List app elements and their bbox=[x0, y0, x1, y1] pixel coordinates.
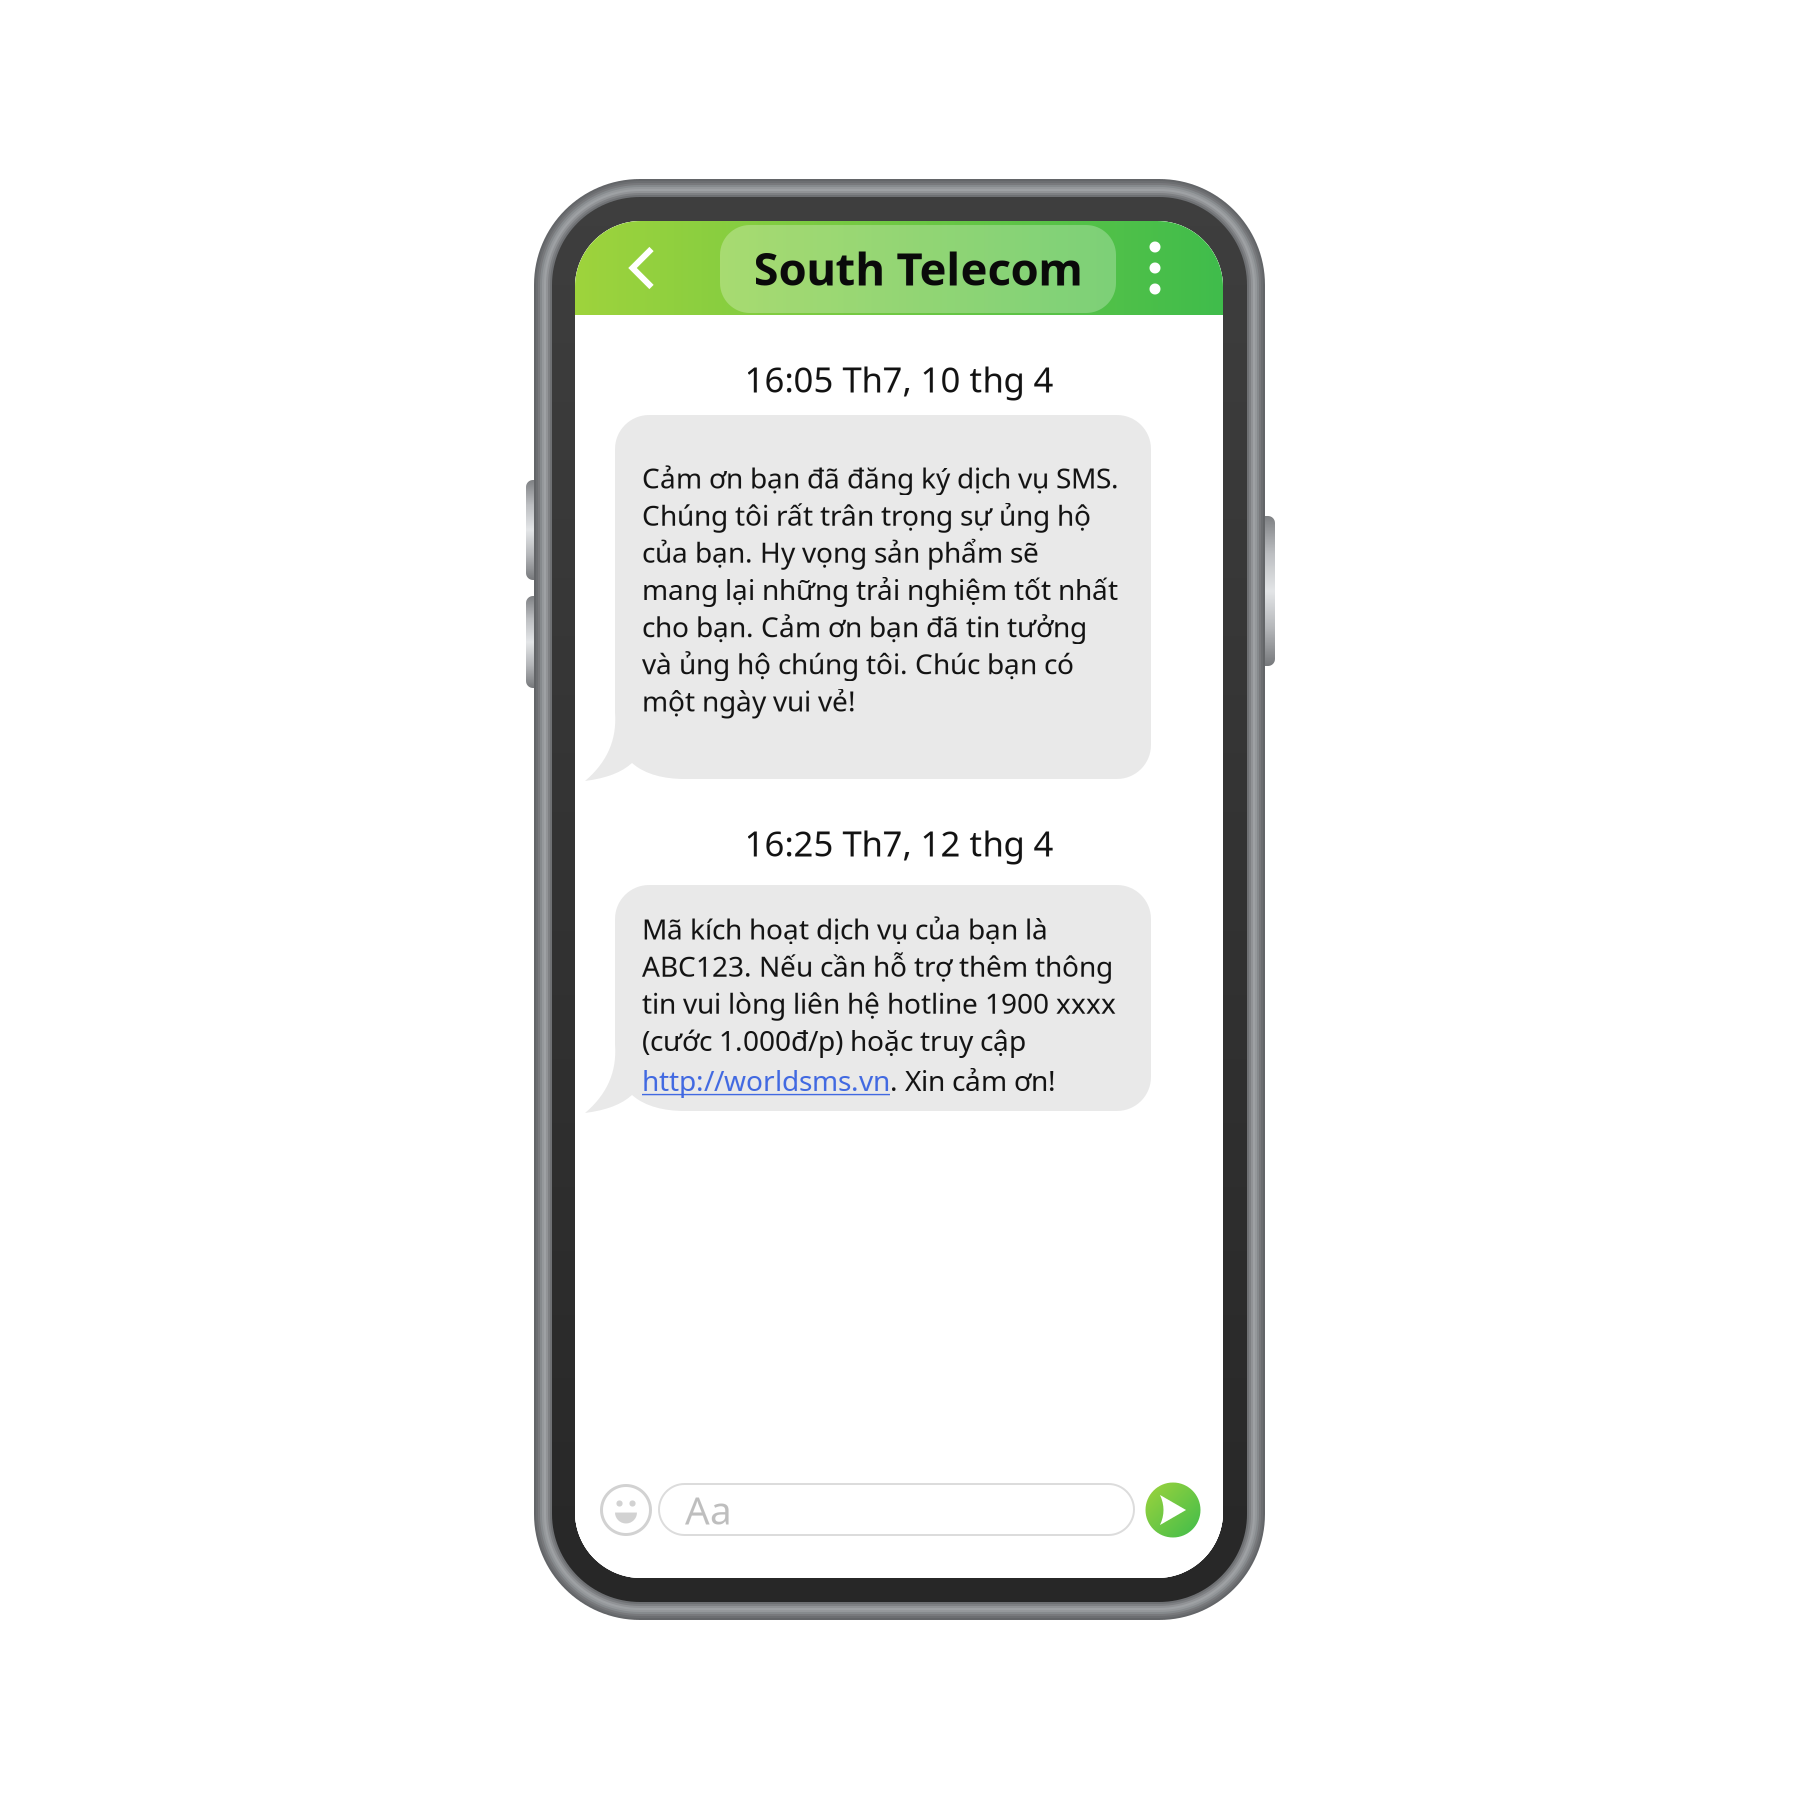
staticText: South Telecom bbox=[753, 238, 1082, 298]
button[interactable]: Back bbox=[604, 221, 680, 315]
staticText: http://worldsms.vn bbox=[642, 1062, 890, 1099]
staticText: Mã kích hoạt dịch vụ của bạn là ABC123. … bbox=[642, 910, 1116, 1059]
button[interactable]: Send bbox=[1144, 1481, 1202, 1539]
button[interactable]: Emoji bbox=[600, 1484, 652, 1536]
staticText: Cảm ơn bạn đã đăng ký dịch vụ SMS. Chúng… bbox=[642, 459, 1119, 719]
button[interactable]: Aa bbox=[659, 1484, 1134, 1535]
staticText: Aa bbox=[685, 1484, 732, 1535]
staticText: 16:25 Th7, 12 thg 4 bbox=[744, 820, 1053, 866]
staticText: 16:05 Th7, 10 thg 4 bbox=[744, 356, 1053, 402]
button[interactable]: More options bbox=[1122, 221, 1188, 315]
staticText: . Xin cảm ơn! bbox=[890, 1062, 1056, 1099]
